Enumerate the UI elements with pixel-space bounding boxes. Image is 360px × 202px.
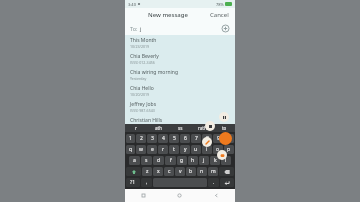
button[interactable]: Record (219, 132, 232, 145)
button[interactable]: c (164, 167, 174, 176)
staticText: Chia Hello (130, 85, 154, 92)
staticText: 6 (184, 135, 187, 142)
staticText: Yesterday (130, 76, 147, 81)
staticText: f (170, 157, 172, 164)
staticText: 78% (216, 2, 224, 7)
button[interactable]: New message (146, 9, 190, 21)
button[interactable]: Backspace (219, 167, 234, 176)
staticText: c (168, 168, 171, 175)
button[interactable]: 0 (224, 134, 234, 143)
button[interactable]: o (213, 145, 223, 154)
staticText: n (200, 168, 204, 175)
staticText: 3 (151, 135, 154, 142)
button[interactable]: a (129, 156, 140, 165)
staticText: 10/23/2019 (130, 44, 150, 49)
staticText: d (157, 157, 161, 164)
staticText: 2 (140, 135, 143, 142)
button[interactable]: u (191, 145, 201, 154)
button[interactable]: Shift (126, 167, 141, 176)
button[interactable]: f (165, 156, 176, 165)
staticText: 10/20/2019 (130, 92, 150, 97)
button[interactable]: Chia Beverly (125, 51, 235, 67)
button[interactable]: b (186, 167, 196, 176)
button[interactable]: d (153, 156, 164, 165)
button[interactable]: s (141, 156, 152, 165)
button[interactable]: ?1 (126, 178, 140, 187)
button[interactable]: Draw (202, 137, 212, 147)
staticText: Jeffrey Jobs (130, 101, 157, 108)
button[interactable]: . (208, 178, 219, 187)
staticText: g (180, 157, 184, 164)
staticText: ?1 (130, 179, 136, 186)
button[interactable]: k (210, 156, 220, 165)
staticText: l (225, 157, 227, 164)
button[interactable]: w (136, 145, 146, 154)
button[interactable]: r (125, 124, 147, 132)
button[interactable]: p (224, 145, 234, 154)
staticText: w (139, 146, 143, 153)
button[interactable]: 5 (169, 134, 179, 143)
button[interactable]: , (141, 178, 152, 187)
button[interactable]: Home (161, 189, 198, 202)
button[interactable]: g (177, 156, 187, 165)
staticText: j (140, 25, 142, 32)
button[interactable]: Christian Hills (125, 115, 235, 124)
button[interactable]: Add recipient (221, 24, 230, 33)
button[interactable]: ss (169, 124, 191, 132)
staticText: Chia Beverly (130, 53, 159, 60)
button[interactable]: 3 (147, 134, 157, 143)
staticText: (555) 987-6543 (130, 108, 155, 113)
button[interactable]: r (158, 145, 168, 154)
button[interactable]: h (188, 156, 198, 165)
staticText: e (151, 146, 154, 153)
button[interactable]: Stop (205, 121, 215, 131)
button[interactable]: e (147, 145, 157, 154)
staticText: v (179, 168, 182, 175)
staticText: y (184, 146, 187, 153)
button[interactable]: Jeffrey Jobs (125, 99, 235, 115)
button[interactable]: l (221, 156, 231, 165)
button[interactable]: Enter (220, 178, 234, 187)
button[interactable]: i (202, 145, 212, 154)
button[interactable]: m (208, 167, 218, 176)
button[interactable]: Back (198, 189, 235, 202)
button[interactable]: Chia Hello (125, 83, 235, 99)
button[interactable]: t (169, 145, 179, 154)
staticText: ath (155, 125, 162, 131)
button[interactable]: 2 (136, 134, 146, 143)
staticText: , (146, 179, 148, 186)
button[interactable]: 1 (126, 134, 135, 143)
staticText: 8 (206, 135, 209, 142)
button[interactable]: ath (147, 124, 169, 132)
staticText: r (162, 146, 165, 153)
button[interactable]: to (213, 124, 235, 132)
button[interactable]: 4 (158, 134, 168, 143)
button[interactable]: 7 (191, 134, 201, 143)
button[interactable]: 6 (180, 134, 190, 143)
staticText: j (203, 157, 205, 164)
staticText: m (211, 168, 216, 175)
staticText: q (129, 146, 133, 153)
button[interactable]: Pause (219, 112, 229, 122)
button[interactable]: Recents (125, 189, 161, 202)
button[interactable]: n (197, 167, 207, 176)
button[interactable]: 9 (213, 134, 223, 143)
button[interactable]: Camera (217, 150, 227, 160)
button[interactable]: Chia wiring morning (125, 67, 235, 83)
button[interactable]: 8 (202, 134, 212, 143)
button[interactable]: Cancel (208, 9, 231, 21)
staticText: (555) 012-3456 (130, 60, 155, 65)
button[interactable]: x (153, 167, 163, 176)
button[interactable]: j (199, 156, 209, 165)
staticText: h (191, 157, 195, 164)
button[interactable]: rath (191, 124, 213, 132)
button[interactable]: z (142, 167, 152, 176)
staticText: Chia wiring morning (130, 69, 178, 76)
button[interactable]: This Month (125, 35, 235, 51)
button[interactable]: v (175, 167, 185, 176)
button[interactable]: y (180, 145, 190, 154)
staticText: To: (130, 25, 138, 32)
staticText: to (222, 125, 227, 131)
button[interactable]: q (126, 145, 135, 154)
